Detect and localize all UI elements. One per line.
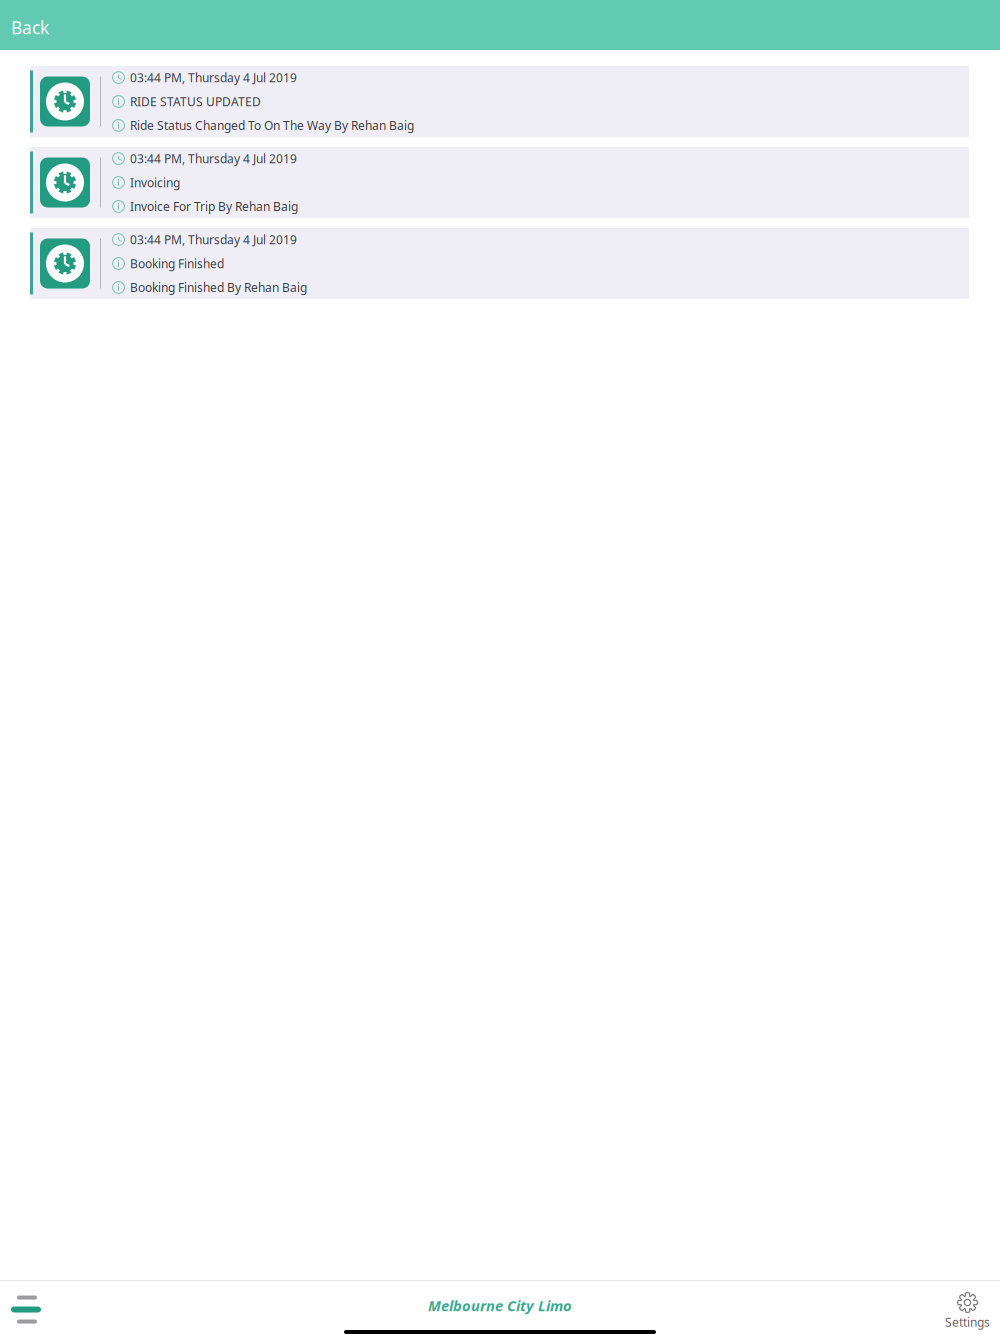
staticText: 03:44 PM, Thursday 4 Jul 2019: [130, 70, 297, 85]
staticText: 03:44 PM, Thursday 4 Jul 2019: [130, 232, 297, 247]
staticText: Settings: [945, 1314, 990, 1330]
staticText: Invoicing: [130, 174, 180, 190]
button[interactable]: 03:44 PM, Thursday 4 Jul 2019: [30, 66, 969, 137]
button[interactable]: Settings: [937, 1279, 1000, 1332]
staticText: Booking Finished By Rehan Baig: [130, 279, 307, 295]
staticText: Invoice For Trip By Rehan Baig: [130, 198, 298, 214]
button[interactable]: Back: [0, 0, 49, 53]
staticText: 03:44 PM, Thursday 4 Jul 2019: [130, 151, 297, 166]
staticText: Ride Status Changed To On The Way By Reh…: [130, 117, 414, 133]
button[interactable]: 03:44 PM, Thursday 4 Jul 2019: [30, 147, 969, 218]
button[interactable]: 03:44 PM, Thursday 4 Jul 2019: [30, 228, 969, 299]
staticText: Melbourne City Limo: [428, 1296, 572, 1315]
button[interactable]: Menu: [0, 1281, 49, 1329]
staticText: Back: [11, 16, 49, 39]
staticText: RIDE STATUS UPDATED: [130, 93, 261, 109]
staticText: Booking Finished: [130, 255, 224, 271]
